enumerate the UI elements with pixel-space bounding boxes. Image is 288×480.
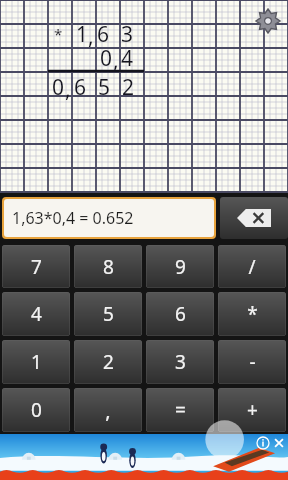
staticText: 0 [31,397,42,423]
button[interactable]: Backspace [220,197,288,239]
staticText: 1,63*0,4 = 0.652 [12,207,134,229]
staticText: , [113,46,119,75]
staticText: 4 [31,301,42,327]
button[interactable]: 1 [2,340,70,384]
button[interactable]: - [218,340,286,384]
staticText: / [248,254,256,280]
button[interactable]: * [218,292,286,336]
staticText: - [249,349,256,375]
button[interactable]: , [74,388,142,432]
staticText: , [105,397,111,424]
button[interactable]: Close ad [272,436,286,450]
staticText: , [88,22,94,51]
button[interactable]: / [218,245,286,288]
staticText: 7 [31,254,42,280]
button[interactable]: 3 [146,340,214,384]
button[interactable]: Settings [253,6,283,36]
button[interactable]: Ad info [256,436,270,450]
button[interactable]: 1,63*0,4 = 0.652 [4,199,214,237]
staticText: * [247,301,258,327]
button[interactable]: 6 [146,292,214,336]
staticText: 3 [121,20,134,49]
staticText: * [54,24,63,44]
staticText: 5 [103,301,114,327]
button[interactable]: 4 [2,292,70,336]
staticText: 8 [103,254,114,280]
staticText: 6 [97,20,110,49]
button[interactable]: = [146,388,214,432]
staticText: 4 [121,44,134,73]
staticText: + [247,397,258,423]
button[interactable]: 8 [74,245,142,288]
staticText: , [65,75,71,104]
button[interactable]: 5 [74,292,142,336]
staticText: 0 [52,73,65,102]
staticText: = [175,397,186,423]
staticText: 3 [175,349,186,375]
button[interactable]: + [218,388,286,432]
button[interactable]: Ad info [0,434,288,480]
staticText: 6 [74,73,87,102]
staticText: 2 [122,73,135,102]
button[interactable]: 9 [146,245,214,288]
button[interactable]: 7 [2,245,70,288]
staticText: 1 [31,349,42,375]
button[interactable]: 0 [2,388,70,432]
staticText: 6 [175,301,186,327]
staticText: 5 [98,73,111,102]
button[interactable]: 2 [74,340,142,384]
staticText: 2 [103,349,114,375]
staticText: 1 [76,20,89,49]
staticText: 9 [175,254,186,280]
staticText: 0 [100,44,113,73]
